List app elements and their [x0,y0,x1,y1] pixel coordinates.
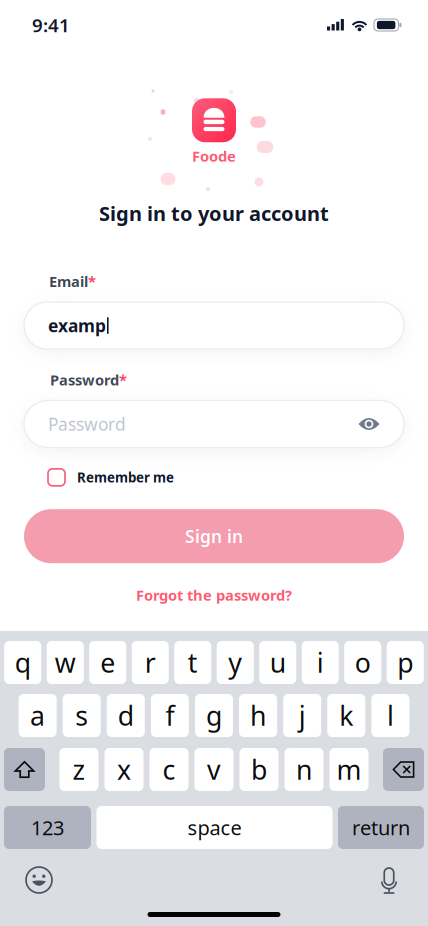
button[interactable]: k [327,694,365,737]
staticText: b [251,752,267,787]
button[interactable]: p [387,641,424,684]
button[interactable]: space [96,806,332,849]
staticText: return [352,814,410,841]
button[interactable]: n [284,748,323,791]
staticText: c [162,752,175,787]
staticText: j [299,698,306,733]
button[interactable]: s [63,694,101,737]
button[interactable]: z [59,748,98,791]
button[interactable]: Remember me [24,447,404,486]
button[interactable]: Forgot the password? [136,563,292,605]
staticText: u [270,645,286,680]
button[interactable]: g [195,694,233,737]
staticText: f [165,698,174,733]
staticText: y [228,645,242,680]
staticText: m [336,752,361,787]
staticText: g [206,698,222,733]
button[interactable]: w [47,641,84,684]
button[interactable]: c [149,748,188,791]
button[interactable]: Emoji [17,858,61,902]
button[interactable]: b [239,748,278,791]
staticText: t [188,645,198,680]
staticText: q [15,645,31,680]
staticText: v [207,752,221,787]
button[interactable]: x [104,748,143,791]
staticText: i [317,645,324,680]
staticText: Sign in to your account [99,200,329,227]
staticText: r [145,645,156,680]
staticText: e [100,645,115,680]
button[interactable]: r [132,641,169,684]
staticText: l [387,698,394,733]
staticText: 9:41 [32,13,70,37]
button[interactable]: Shift [4,748,45,791]
staticText: Password [50,370,119,389]
staticText: x [117,752,131,787]
staticText: o [355,645,371,680]
staticText: Remember me [77,468,174,486]
staticText: p [397,645,413,680]
button[interactable]: m [329,748,368,791]
button[interactable]: d [107,694,145,737]
button[interactable]: u [259,641,296,684]
button[interactable]: return [338,806,424,849]
staticText: w [55,645,76,680]
staticText: z [72,752,85,787]
button[interactable]: j [283,694,321,737]
button[interactable]: Dictation [367,858,411,902]
staticText: Password [48,412,126,435]
staticText: space [187,814,241,841]
button[interactable]: l [371,694,409,737]
staticText: k [339,698,353,733]
staticText: Email [49,272,88,291]
staticText: s [75,698,88,733]
button[interactable]: i [302,641,339,684]
button[interactable]: e [89,641,126,684]
button[interactable]: t [174,641,211,684]
button[interactable]: Sign in [24,509,404,563]
staticText: Forgot the password? [136,585,292,605]
staticText: a [30,698,45,733]
staticText: d [118,698,134,733]
staticText: * [88,272,96,291]
button[interactable]: y [217,641,254,684]
button[interactable]: q [4,641,41,684]
button[interactable]: h [239,694,277,737]
button[interactable]: o [344,641,381,684]
staticText: * [119,370,127,389]
staticText: Sign in [185,525,243,548]
button[interactable]: a [19,694,57,737]
button[interactable]: 123 [4,806,91,849]
staticText: n [296,752,312,787]
staticText: h [250,698,266,733]
staticText: examp [48,314,106,337]
button[interactable]: v [194,748,233,791]
staticText: Foode [192,146,236,166]
staticText: 123 [31,814,64,841]
button[interactable]: f [151,694,189,737]
button[interactable]: Delete [383,748,424,791]
